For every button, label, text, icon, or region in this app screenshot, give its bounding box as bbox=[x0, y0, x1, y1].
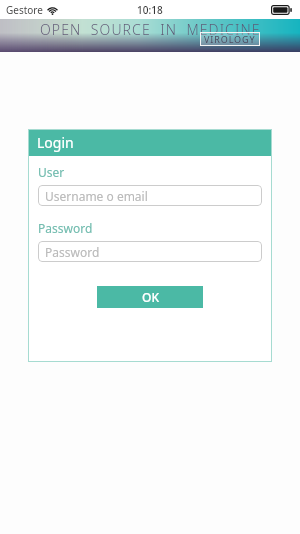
button[interactable]: Username or email field bbox=[38, 185, 262, 206]
staticText: OPEN SOURCE IN MEDICINE bbox=[40, 20, 261, 39]
button[interactable]: Password field bbox=[38, 241, 262, 262]
staticText: VIROLOGY bbox=[204, 33, 256, 45]
staticText: 10:18 bbox=[137, 3, 163, 17]
staticText: Password bbox=[45, 244, 100, 260]
staticText: OK bbox=[142, 289, 159, 305]
button[interactable]: Login bbox=[28, 129, 272, 156]
staticText: Gestore bbox=[6, 3, 43, 17]
staticText: Login bbox=[37, 133, 74, 152]
staticText: Username o email bbox=[45, 188, 148, 204]
button[interactable]: OK bbox=[97, 286, 203, 308]
staticText: Password bbox=[38, 220, 93, 236]
staticText: User bbox=[38, 164, 65, 180]
